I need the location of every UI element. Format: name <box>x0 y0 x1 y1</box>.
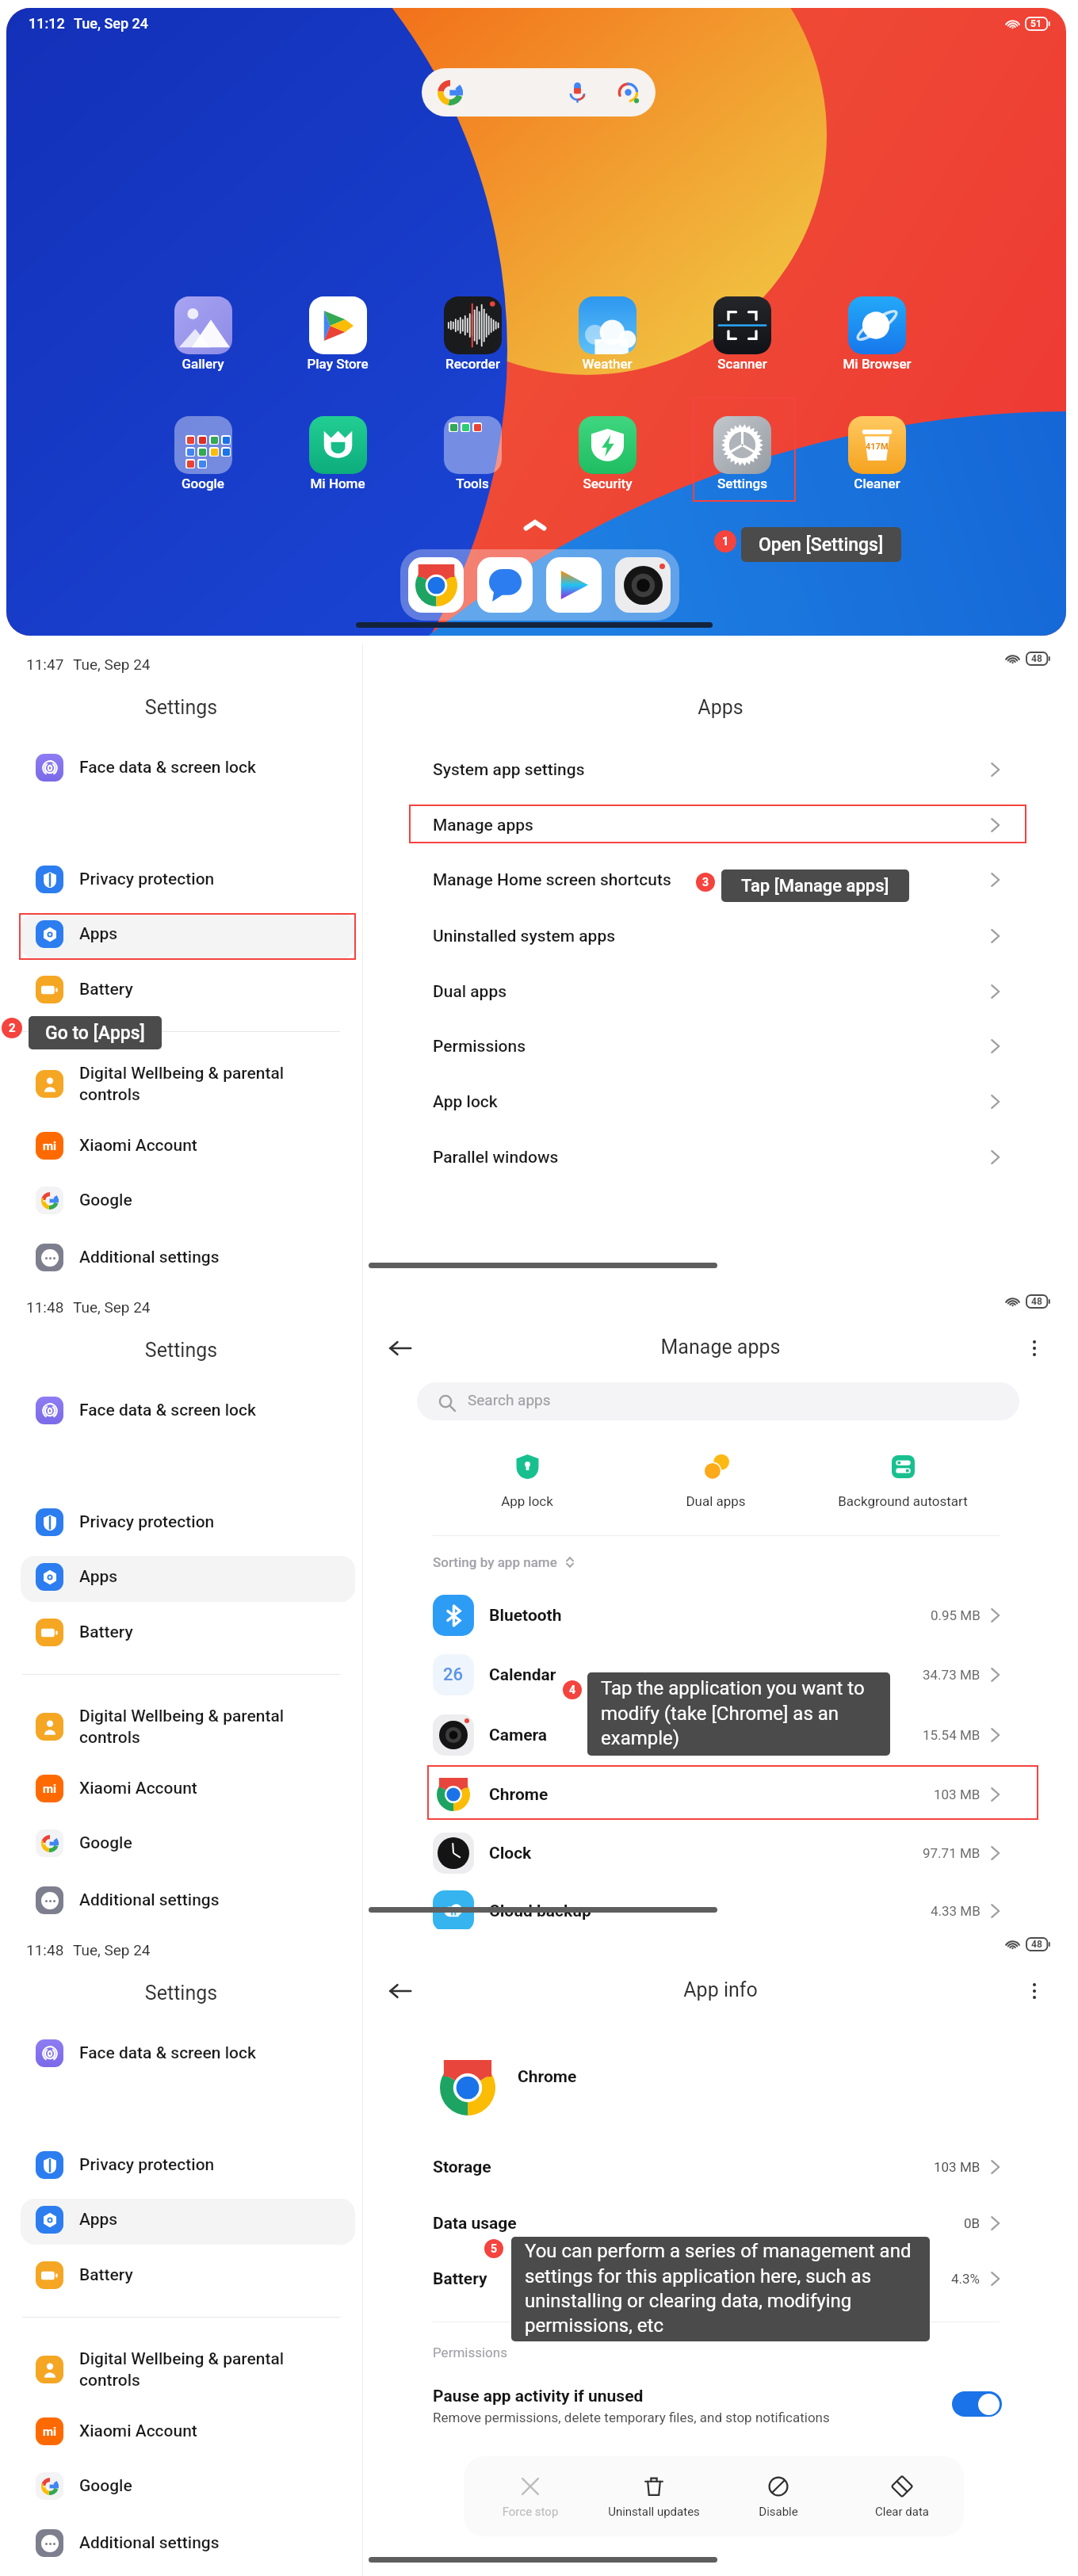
button[interactable]: Manage apps <box>363 797 1078 853</box>
button[interactable]: 26 <box>363 1645 1078 1704</box>
button[interactable] <box>422 68 656 117</box>
button[interactable]: App lock <box>440 1453 614 1509</box>
button[interactable]: mi <box>0 1763 362 1814</box>
button[interactable]: Messages <box>477 557 533 613</box>
staticText: 34.73 MB <box>923 1667 981 1683</box>
button[interactable]: Storage <box>363 2142 1078 2192</box>
staticText: Google <box>79 1833 132 1853</box>
button[interactable]: Uninstalled system apps <box>363 908 1078 964</box>
button[interactable]: Dual apps <box>363 964 1078 1019</box>
staticText: Settings <box>0 1339 362 1362</box>
staticText: App lock <box>501 1493 553 1509</box>
button[interactable]: Digital Wellbeing & parental controls <box>0 1058 362 1109</box>
staticText: Manage apps <box>433 816 533 835</box>
button[interactable]: Pause app activity toggle <box>952 2391 1002 2417</box>
staticText: Search apps <box>468 1391 551 1408</box>
button[interactable]: Mi Home <box>289 416 386 491</box>
staticText: Additional settings <box>79 1890 220 1910</box>
staticText: 97.71 MB <box>923 1845 981 1861</box>
staticText: Chrome <box>489 1785 549 1805</box>
button[interactable]: Battery <box>0 964 362 1015</box>
button[interactable]: Dual apps <box>629 1453 803 1509</box>
staticText: Digital Wellbeing & parental controls <box>79 2349 285 2390</box>
staticText: Settings <box>0 696 362 719</box>
button[interactable]: Face data & screen lock <box>0 742 362 793</box>
button[interactable]: Manage Home screen shortcuts <box>363 852 1078 908</box>
button[interactable]: Clear data <box>835 2475 964 2519</box>
staticText: Weather <box>582 356 633 372</box>
button[interactable]: Camera <box>363 1706 1078 1764</box>
button[interactable]: Apps <box>0 1551 362 1602</box>
button[interactable]: Data usage <box>363 2198 1078 2249</box>
button[interactable]: Chrome <box>363 1765 1078 1824</box>
staticText: 417M <box>866 441 889 452</box>
button[interactable]: Gallery <box>155 296 251 372</box>
staticText: 11:12 <box>29 15 65 32</box>
button[interactable]: Play Store <box>546 557 602 613</box>
staticText: Apps <box>363 696 1078 719</box>
button[interactable]: Search apps <box>417 1382 1019 1420</box>
staticText: 0B <box>964 2215 981 2231</box>
button[interactable]: Google <box>0 1817 362 1868</box>
button[interactable]: Battery <box>0 1607 362 1657</box>
button[interactable]: Digital Wellbeing & parental controls <box>0 1701 362 1752</box>
button[interactable]: Background autostart <box>816 1453 990 1509</box>
staticText: Mi Home <box>310 476 365 491</box>
button[interactable]: Face data & screen lock <box>0 2028 362 2078</box>
button[interactable]: Settings <box>694 416 790 491</box>
button[interactable]: Google <box>0 1175 362 1225</box>
staticText: Security <box>583 476 633 491</box>
button[interactable]: Apps <box>0 908 362 959</box>
button[interactable]: Cloud backup <box>363 1882 1078 1940</box>
staticText: Privacy protection <box>79 2155 215 2175</box>
staticText: 103 MB <box>934 2159 981 2175</box>
staticText: Parallel windows <box>433 1148 559 1168</box>
button[interactable]: Disable <box>711 2475 846 2519</box>
button[interactable]: Battery <box>363 2253 1078 2304</box>
button[interactable]: Additional settings <box>0 1232 362 1282</box>
button[interactable]: Play Store <box>289 296 386 372</box>
button[interactable]: Privacy protection <box>0 854 362 904</box>
button[interactable]: Recorder <box>424 296 521 372</box>
button[interactable]: Tools <box>424 416 521 491</box>
staticText: Privacy protection <box>79 1512 215 1532</box>
staticText: Settings <box>0 1982 362 2005</box>
staticText: Xiaomi Account <box>79 1779 197 1798</box>
button[interactable]: Back <box>384 1975 416 2007</box>
staticText: Privacy protection <box>79 869 215 889</box>
button[interactable]: Privacy protection <box>0 1496 362 1547</box>
button[interactable]: Privacy protection <box>0 2139 362 2190</box>
button[interactable]: Digital Wellbeing & parental controls <box>0 2344 362 2394</box>
button[interactable]: mi <box>0 1120 362 1171</box>
button[interactable]: Apps <box>0 2194 362 2245</box>
button[interactable]: Force stop <box>464 2475 598 2519</box>
button[interactable]: Google <box>0 2460 362 2511</box>
button[interactable]: 417M <box>828 416 925 491</box>
button[interactable]: App lock <box>363 1074 1078 1129</box>
staticText: System app settings <box>433 760 585 780</box>
button[interactable]: Uninstall updates <box>587 2475 721 2519</box>
button[interactable]: Parallel windows <box>363 1129 1078 1185</box>
button[interactable]: More options <box>1019 1975 1050 2007</box>
button[interactable]: Scanner <box>694 296 790 372</box>
staticText: Digital Wellbeing & parental controls <box>79 1064 285 1104</box>
button[interactable]: Google <box>155 416 251 491</box>
button[interactable]: Security <box>559 416 656 491</box>
button[interactable]: Bluetooth <box>363 1586 1078 1645</box>
button[interactable]: Permissions <box>363 1019 1078 1074</box>
staticText: Apps <box>79 924 118 944</box>
button[interactable]: Additional settings <box>0 1875 362 1925</box>
button[interactable]: Battery <box>0 2249 362 2300</box>
button[interactable]: More options <box>1019 1332 1050 1364</box>
button[interactable]: Face data & screen lock <box>0 1385 362 1435</box>
button[interactable]: Mi Browser <box>828 296 925 372</box>
staticText: Uninstalled system apps <box>433 927 615 946</box>
button[interactable]: Camera <box>615 557 671 613</box>
button[interactable]: Clock <box>363 1824 1078 1882</box>
button[interactable]: Additional settings <box>0 2517 362 2568</box>
button[interactable]: System app settings <box>363 742 1078 797</box>
button[interactable]: Back <box>384 1332 416 1364</box>
button[interactable]: mi <box>0 2406 362 2456</box>
button[interactable]: Weather <box>559 296 656 372</box>
button[interactable]: Chrome <box>408 557 464 613</box>
